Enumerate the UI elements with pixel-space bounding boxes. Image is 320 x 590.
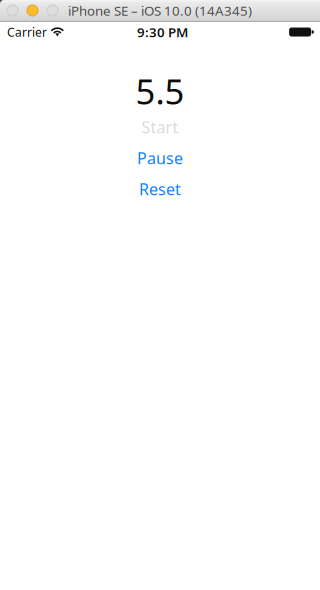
- button[interactable]: Start: [0, 120, 320, 134]
- staticText: Start: [141, 116, 178, 138]
- staticText: 5.5: [135, 68, 184, 114]
- staticText: Carrier: [7, 24, 47, 40]
- staticText: Reset: [139, 178, 181, 200]
- staticText: 9:30 PM: [137, 23, 188, 41]
- button[interactable]: Reset: [0, 182, 320, 196]
- button[interactable]: Pause: [0, 151, 320, 165]
- staticText: iPhone SE – iOS 10.0 (14A345): [68, 2, 252, 19]
- staticText: Pause: [137, 147, 183, 169]
